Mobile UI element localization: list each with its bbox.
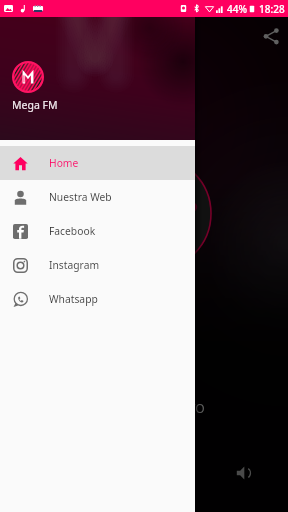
button[interactable]: Home — [0, 146, 195, 180]
staticText: Whatsapp — [49, 292, 98, 306]
staticText: 44% — [227, 2, 247, 16]
button[interactable]: Nuestra Web — [0, 180, 195, 214]
staticText: Nuestra Web — [49, 190, 112, 204]
staticText: Home — [49, 156, 79, 170]
staticText: Instagram — [49, 258, 100, 272]
button[interactable]: Volume — [232, 461, 256, 485]
button[interactable]: Facebook — [0, 214, 195, 248]
staticText: EN VIVO — [158, 400, 205, 416]
staticText: Mega FM — [12, 98, 58, 112]
button[interactable]: Whatsapp — [0, 282, 195, 316]
button[interactable]: Instagram — [0, 248, 195, 282]
staticText: Facebook — [49, 224, 96, 238]
button[interactable]: Share — [259, 24, 283, 48]
staticText: 18:28 — [259, 2, 285, 16]
